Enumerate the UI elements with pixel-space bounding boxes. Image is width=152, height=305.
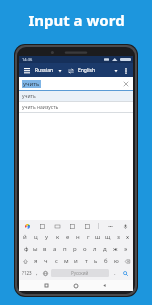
button[interactable]: о xyxy=(80,243,90,255)
button[interactable]: т xyxy=(81,255,91,267)
staticText: ь xyxy=(94,257,98,265)
button[interactable]: р xyxy=(70,243,80,255)
staticText: ф xyxy=(24,245,29,253)
button[interactable]: ф xyxy=(22,243,31,255)
staticText: Русский xyxy=(71,270,89,276)
button[interactable]: Open navigation drawer xyxy=(22,66,31,75)
button[interactable]: Swap languages xyxy=(66,66,75,75)
button[interactable]: щ xyxy=(103,231,113,243)
staticText: т xyxy=(85,257,88,265)
staticText: х xyxy=(126,233,130,241)
button[interactable]: ц xyxy=(30,231,41,243)
staticText: с xyxy=(55,257,58,265)
button[interactable]: м xyxy=(61,255,71,267)
button[interactable]: учить xyxy=(19,77,133,90)
staticText: я xyxy=(34,257,38,265)
staticText: ?123 xyxy=(22,270,32,276)
staticText: ы xyxy=(33,245,38,253)
button[interactable]: gif xyxy=(53,222,61,230)
button[interactable]: Backspace xyxy=(121,255,133,267)
staticText: у xyxy=(45,233,49,241)
button[interactable]: Shift xyxy=(19,255,31,267)
button[interactable]: ?123 xyxy=(20,267,33,279)
staticText: м xyxy=(64,257,69,265)
button[interactable]: Voice input xyxy=(121,222,129,230)
staticText: щ xyxy=(105,233,111,241)
staticText: Input a word xyxy=(28,10,125,30)
staticText: в xyxy=(43,245,47,253)
staticText: а xyxy=(53,245,57,253)
button[interactable]: к xyxy=(52,231,63,243)
button[interactable]: more xyxy=(106,222,114,230)
button[interactable]: ы xyxy=(31,243,40,255)
staticText: з xyxy=(117,233,120,241)
button[interactable]: English xyxy=(78,67,96,74)
button[interactable]: Русский xyxy=(51,269,109,277)
staticText: э xyxy=(124,245,127,253)
staticText: д xyxy=(103,245,107,253)
staticText: е xyxy=(66,233,70,241)
button[interactable]: в xyxy=(40,243,50,255)
button[interactable]: sticker xyxy=(38,222,46,230)
button[interactable]: , xyxy=(33,267,41,279)
button[interactable]: учить xyxy=(19,91,133,101)
button[interactable]: ш xyxy=(93,231,103,243)
staticText: учить xyxy=(22,93,36,100)
button[interactable]: ж xyxy=(110,243,120,255)
staticText: ц xyxy=(34,233,38,241)
button[interactable]: п xyxy=(60,243,70,255)
button[interactable]: Language options xyxy=(112,67,119,74)
staticText: ю xyxy=(114,257,119,265)
button[interactable]: с xyxy=(51,255,61,267)
staticText: ж xyxy=(113,245,118,253)
staticText: Russian xyxy=(35,67,54,74)
staticText: English xyxy=(78,67,96,74)
button[interactable]: Change keyboard language xyxy=(41,267,50,279)
staticText: и xyxy=(74,257,78,265)
button[interactable]: и xyxy=(71,255,81,267)
button[interactable]: х xyxy=(123,231,133,243)
button[interactable]: Home xyxy=(71,281,80,290)
button[interactable]: ч xyxy=(41,255,51,267)
button[interactable]: й xyxy=(19,231,30,243)
button[interactable]: е xyxy=(63,231,73,243)
staticText: учить наизусть xyxy=(22,104,59,111)
button[interactable]: Google search xyxy=(23,222,31,230)
staticText: б xyxy=(104,257,108,265)
button[interactable]: Recent apps xyxy=(42,281,51,290)
button[interactable]: н xyxy=(73,231,83,243)
button[interactable]: б xyxy=(101,255,111,267)
staticText: н xyxy=(76,233,80,241)
staticText: г xyxy=(87,233,90,241)
staticText: ш xyxy=(95,233,101,241)
button[interactable]: я xyxy=(31,255,41,267)
button[interactable]: Search xyxy=(119,267,132,279)
staticText: 14:36 xyxy=(22,57,33,62)
button[interactable]: учить наизусть xyxy=(19,102,133,112)
staticText: л xyxy=(93,245,97,253)
button[interactable]: з xyxy=(113,231,123,243)
button[interactable]: settings xyxy=(83,222,91,230)
button[interactable]: г xyxy=(83,231,93,243)
button[interactable]: ь xyxy=(91,255,101,267)
button[interactable]: э xyxy=(120,243,130,255)
staticText: . xyxy=(114,269,116,277)
button[interactable]: More options xyxy=(121,66,130,75)
staticText: п xyxy=(63,245,67,253)
staticText: к xyxy=(56,233,60,241)
staticText: р xyxy=(73,245,77,253)
button[interactable]: д xyxy=(100,243,110,255)
button[interactable]: л xyxy=(90,243,100,255)
button[interactable]: clipboard xyxy=(68,222,76,230)
staticText: , xyxy=(36,269,38,277)
button[interactable]: у xyxy=(41,231,52,243)
staticText: й xyxy=(23,233,27,241)
button[interactable]: . xyxy=(110,267,119,279)
button[interactable]: Clear text xyxy=(122,80,130,88)
staticText: о xyxy=(83,245,87,253)
button[interactable]: Back xyxy=(100,281,109,290)
button[interactable]: а xyxy=(50,243,60,255)
button[interactable]: ю xyxy=(111,255,121,267)
staticText: ч xyxy=(44,257,48,265)
button[interactable]: Russian xyxy=(35,67,62,74)
